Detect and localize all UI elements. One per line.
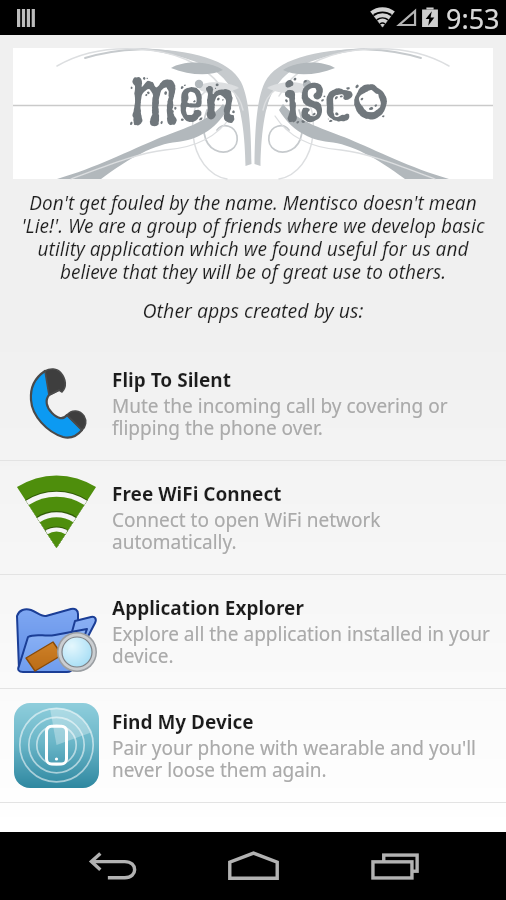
button[interactable]: Back bbox=[84, 837, 142, 895]
staticText: Find My Device bbox=[112, 709, 254, 735]
staticText: Men bbox=[130, 63, 236, 145]
button[interactable]: Recent apps bbox=[366, 837, 424, 895]
staticText: Other apps created by us: bbox=[0, 297, 506, 324]
staticText: Don't get fouled by the name. Mentisco d… bbox=[0, 190, 506, 284]
staticText: Flip To Silent bbox=[112, 367, 231, 393]
button[interactable]: Home bbox=[224, 837, 282, 895]
button[interactable]: Application Explorer bbox=[0, 575, 506, 688]
staticText: Explore all the application installed in… bbox=[112, 621, 490, 669]
staticText: Application Explorer bbox=[112, 595, 304, 621]
staticText: 9:53 bbox=[446, 0, 500, 35]
staticText: Free WiFi Connect bbox=[112, 481, 282, 507]
button[interactable]: Free WiFi Connect bbox=[0, 461, 506, 574]
staticText: Pair your phone with wearable and you'll… bbox=[112, 735, 476, 783]
staticText: isco bbox=[283, 63, 388, 145]
button[interactable]: Find My Device bbox=[0, 689, 506, 802]
staticText: Mute the incoming call by covering or fl… bbox=[112, 393, 448, 441]
staticText: Connect to open WiFi network automatical… bbox=[112, 507, 381, 555]
button[interactable]: Flip To Silent bbox=[0, 347, 506, 460]
